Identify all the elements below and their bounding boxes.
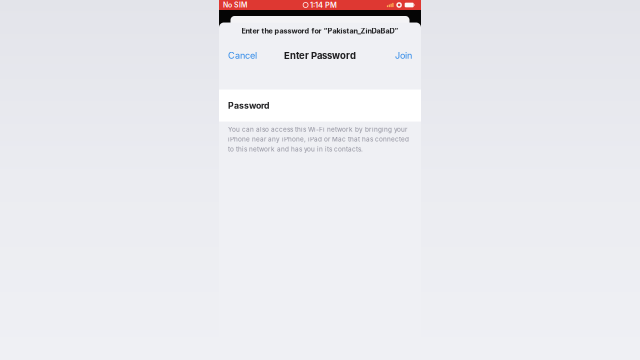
button[interactable]: Password bbox=[219, 89, 421, 121]
staticText: Enter Password bbox=[284, 50, 356, 61]
staticText: Join bbox=[395, 50, 412, 61]
button[interactable]: Cancel bbox=[226, 46, 259, 65]
staticText: to this network and has you in its conta… bbox=[228, 145, 363, 153]
staticText: You can also access this Wi-Fi network b… bbox=[228, 125, 407, 133]
staticText: iPhone near any iPhone, iPad or Mac that… bbox=[228, 135, 409, 143]
staticText: Enter the password for “Pakistan_ZinDaBa… bbox=[241, 27, 398, 35]
staticText: 1:14 PM bbox=[310, 0, 337, 9]
staticText: No SIM bbox=[223, 1, 247, 9]
staticText: Password bbox=[228, 100, 269, 111]
staticText: Cancel bbox=[228, 50, 257, 61]
button[interactable]: Join bbox=[393, 46, 414, 65]
